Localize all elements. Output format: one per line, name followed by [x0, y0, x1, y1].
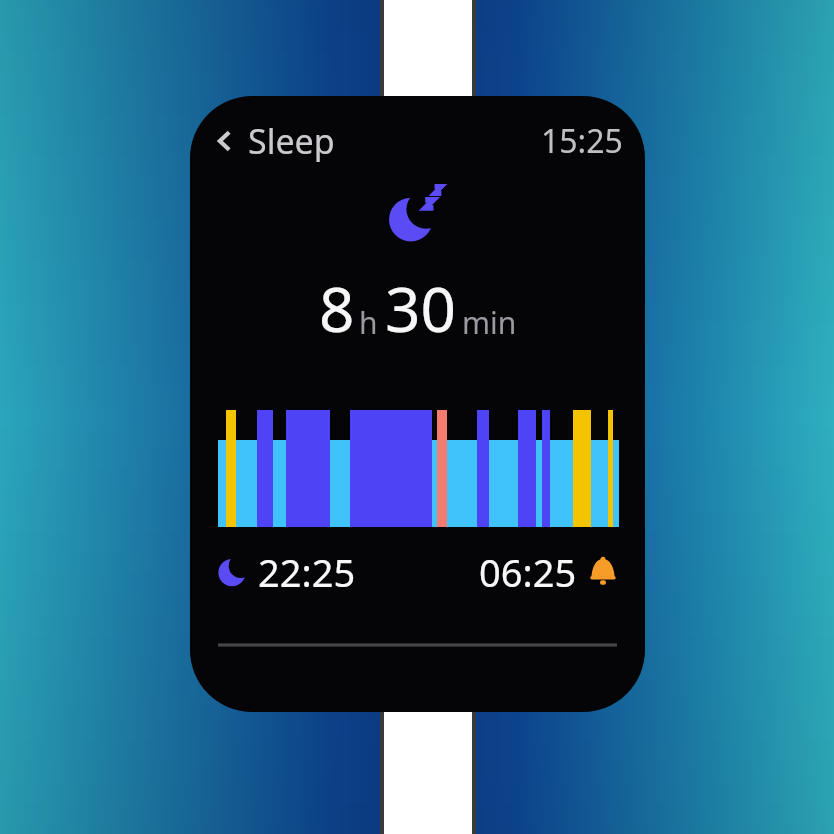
- staticText: 8: [319, 266, 355, 350]
- other: Back: [212, 128, 238, 154]
- button[interactable]: 06:25: [479, 546, 619, 598]
- button[interactable]: Back: [212, 118, 341, 164]
- staticText: 22:25: [258, 546, 356, 598]
- staticText: 06:25: [479, 546, 577, 598]
- button[interactable]: Sleep stages chart: [190, 404, 645, 534]
- staticText: 15:25: [541, 119, 623, 163]
- staticText: min: [462, 302, 517, 343]
- other: Alarm: [587, 556, 619, 588]
- staticText: Sleep: [248, 118, 335, 164]
- staticText: 30: [385, 266, 456, 350]
- button[interactable]: Bedtime: [216, 546, 356, 598]
- other: Sleep: [382, 180, 454, 246]
- other: Bedtime: [216, 555, 250, 589]
- staticText: h: [359, 302, 378, 343]
